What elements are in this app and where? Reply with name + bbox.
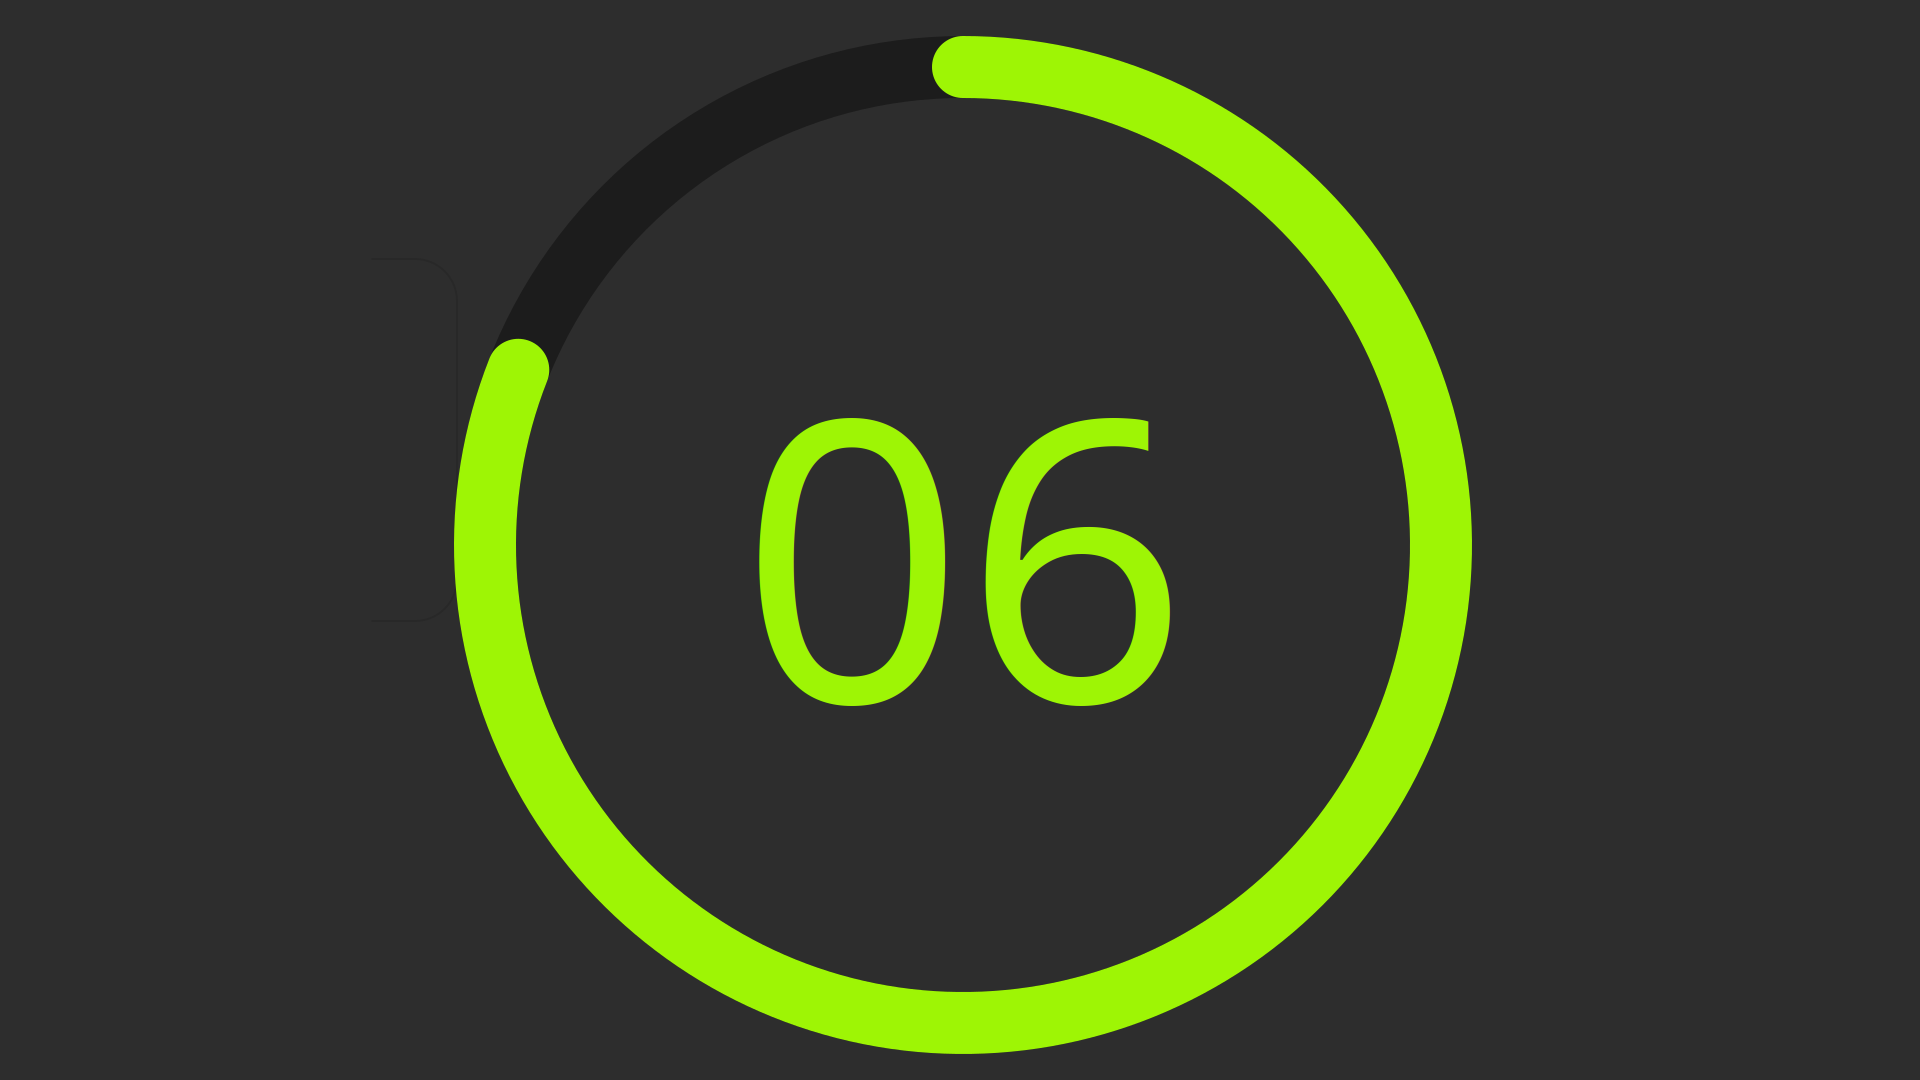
staticText: 6 seconds remaining [740, 290, 1188, 810]
